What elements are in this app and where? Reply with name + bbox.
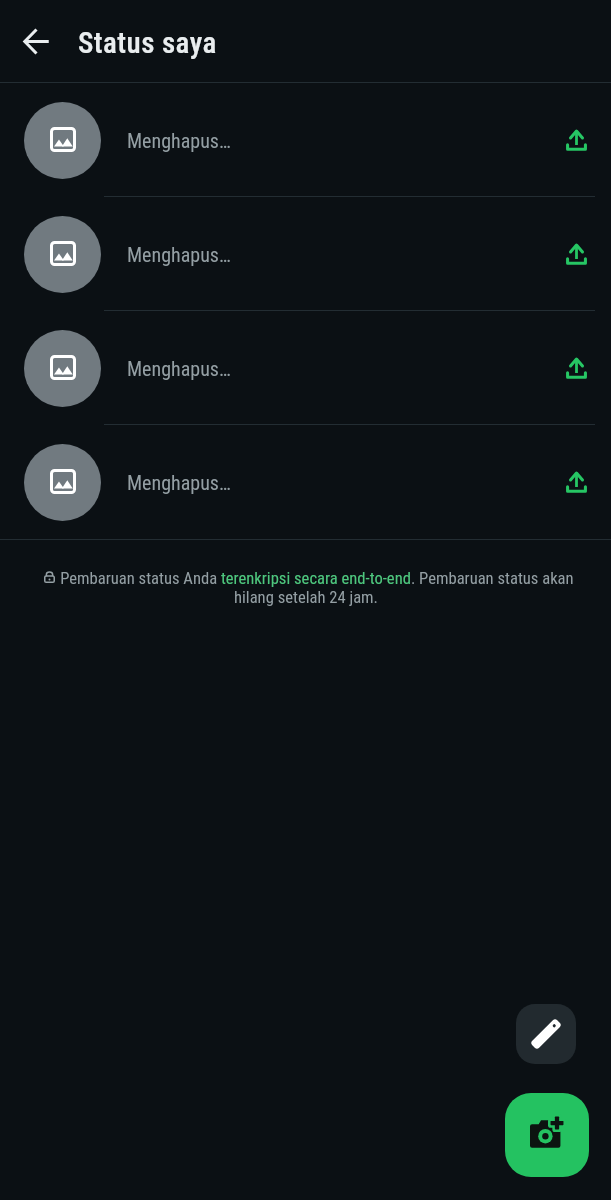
button[interactable]: Write a status	[516, 1004, 576, 1064]
button[interactable]: Back	[8, 13, 64, 69]
staticText: Pembaruan status Anda terenkripsi secara…	[38, 569, 574, 607]
button[interactable]: Upload	[548, 454, 604, 510]
button[interactable]: Add a camera status	[505, 1093, 589, 1177]
button[interactable]: Upload	[548, 112, 604, 168]
button[interactable]: Menghapus…	[0, 311, 611, 425]
button[interactable]: Upload	[548, 340, 604, 396]
staticText: Menghapus…	[127, 243, 231, 266]
button[interactable]: Upload	[548, 226, 604, 282]
button[interactable]: Menghapus…	[0, 197, 611, 311]
button[interactable]: Menghapus…	[0, 425, 611, 539]
staticText: Menghapus…	[127, 129, 231, 152]
staticText: Status saya	[78, 26, 217, 60]
staticText: Menghapus…	[127, 471, 231, 494]
staticText: Menghapus…	[127, 357, 231, 380]
button[interactable]: Menghapus…	[0, 83, 611, 197]
